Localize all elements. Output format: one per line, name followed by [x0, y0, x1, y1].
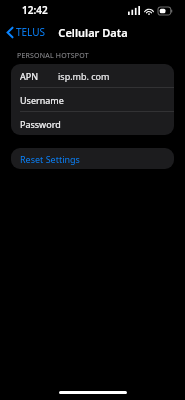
staticText: isp.mb. com — [58, 70, 110, 82]
button[interactable]: Username — [11, 88, 174, 112]
staticText: 12:42 — [22, 3, 48, 17]
staticText: Username — [20, 94, 64, 106]
staticText: Reset Settings — [20, 153, 80, 165]
staticText: PERSONAL HOTSPOT — [17, 51, 89, 61]
button[interactable]: APN — [11, 64, 174, 88]
button[interactable]: Reset Settings — [11, 148, 174, 169]
staticText: TELUS — [16, 25, 46, 39]
staticText: APN — [20, 70, 39, 82]
staticText: Cellular Data — [58, 25, 128, 40]
staticText: Password — [20, 118, 61, 130]
button[interactable]: Password — [11, 112, 174, 135]
button[interactable]: TELUS — [0, 21, 52, 43]
